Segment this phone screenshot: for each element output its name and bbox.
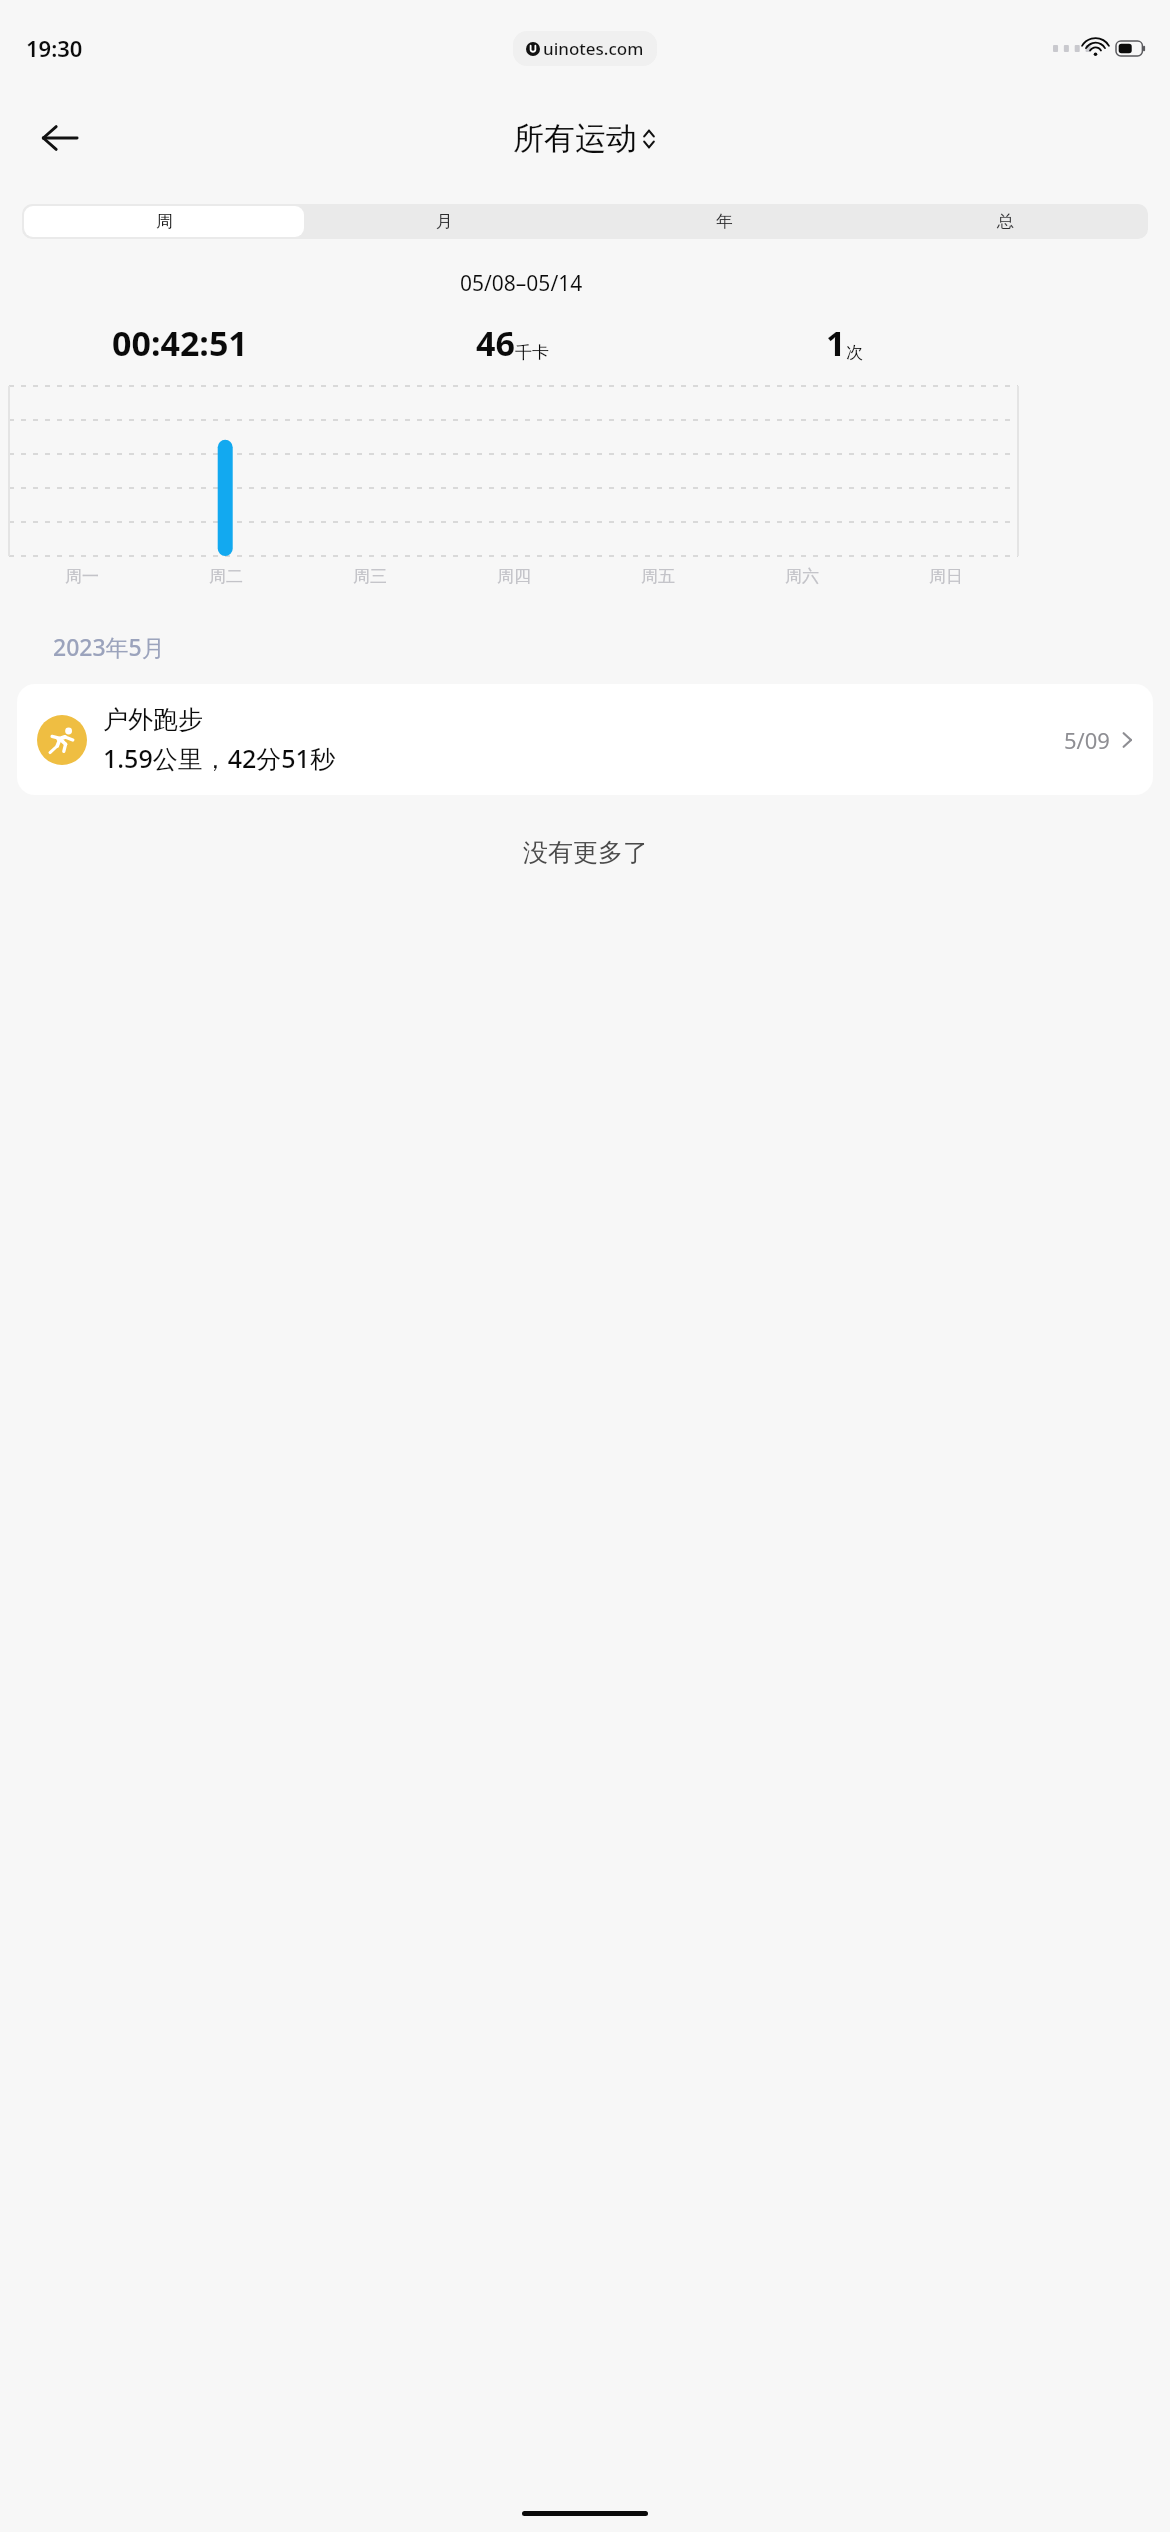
staticText: 5/09 [1064, 725, 1110, 755]
staticText: 05/08–05/14 [460, 269, 583, 298]
staticText: 所有运动 [513, 119, 637, 158]
staticText: 00:42:51 [112, 320, 248, 366]
staticText: uinotes.com [543, 37, 644, 60]
button[interactable]: Back [32, 110, 88, 166]
staticText: 周四 [497, 566, 531, 587]
staticText: 周二 [209, 566, 243, 587]
button[interactable]: 户外跑步 [17, 684, 1153, 795]
staticText: 2023年5月 [53, 631, 165, 662]
button[interactable]: 所有运动 [513, 119, 657, 158]
staticText: 周五 [641, 566, 675, 587]
staticText: 周日 [929, 566, 963, 587]
staticText: 总 [997, 211, 1014, 232]
staticText: 千卡 [515, 342, 549, 363]
staticText: 1.59公里，42分51秒 [103, 741, 335, 775]
staticText: 46 [476, 320, 515, 366]
staticText: 没有更多了 [523, 837, 648, 868]
button[interactable]: 周 [24, 206, 304, 237]
staticText: 周六 [785, 566, 819, 587]
staticText: 次 [846, 342, 863, 363]
staticText: 周一 [65, 566, 99, 587]
staticText: 月 [436, 211, 453, 232]
staticText: 1 [826, 320, 846, 366]
staticText: 户外跑步 [103, 704, 203, 735]
staticText: 周三 [353, 566, 387, 587]
staticText: 19:30 [26, 33, 83, 63]
button[interactable]: 月 [304, 206, 584, 237]
staticText: 年 [716, 211, 733, 232]
button[interactable]: 年 [584, 206, 865, 237]
button[interactable]: 总 [865, 206, 1146, 237]
staticText: 周 [156, 211, 173, 232]
